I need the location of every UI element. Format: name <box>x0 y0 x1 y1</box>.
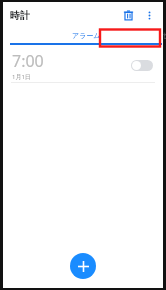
staticText: 1月1日 <box>12 73 31 81</box>
button[interactable]: More options <box>139 5 159 25</box>
staticText: 7:00 <box>12 50 44 72</box>
button[interactable]: Alarm toggle <box>129 55 155 75</box>
staticText: アラーム <box>72 31 101 40</box>
button[interactable]: Delete <box>118 5 138 25</box>
button[interactable]: Add alarm <box>70 253 96 279</box>
button[interactable]: 7:00 <box>3 48 163 82</box>
staticText: 時計 <box>10 9 30 22</box>
button[interactable]: アラーム <box>9 28 163 45</box>
